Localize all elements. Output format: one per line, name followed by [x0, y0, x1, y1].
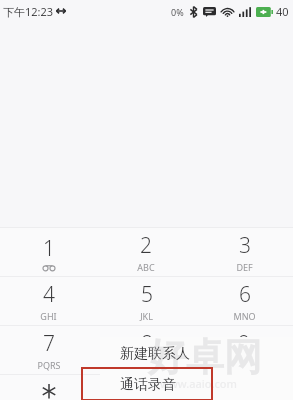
button[interactable]: 4 [0, 277, 97, 325]
button[interactable]: 7 [0, 326, 97, 374]
button[interactable]: 3 [195, 228, 293, 276]
staticText: www.aaio.com [160, 376, 237, 391]
staticText: 8 [141, 329, 153, 358]
staticText: 4 [43, 280, 55, 309]
staticText: 下午12:23 [3, 4, 54, 19]
staticText: DEF [236, 261, 253, 273]
staticText: PQRS [37, 359, 61, 371]
staticText: WXYZ [232, 359, 256, 371]
button[interactable]: 1 [0, 228, 97, 276]
staticText: 7 [43, 329, 55, 358]
staticText: TUV [138, 359, 155, 371]
staticText: GHI [40, 310, 57, 322]
staticText: 6 [239, 280, 251, 309]
button[interactable]: , [0, 375, 97, 400]
button[interactable]: 2 [97, 228, 195, 276]
button[interactable]: 5 [97, 277, 195, 325]
staticText: 40 [276, 4, 289, 19]
staticText: 5 [141, 280, 153, 309]
staticText: MNO [233, 310, 256, 322]
button[interactable]: 新建联系人 [100, 337, 293, 370]
button[interactable]: 通话录音 [100, 370, 293, 400]
staticText: 新建联系人 [120, 345, 190, 363]
staticText: 0 [140, 378, 152, 400]
button[interactable]: 6 [195, 277, 293, 325]
staticText: 9 [238, 329, 250, 358]
staticText: 好卓网 [148, 333, 262, 381]
button[interactable]: 9 [195, 326, 293, 374]
staticText: 通话录音 [120, 376, 176, 394]
staticText: JKL [140, 310, 153, 322]
button[interactable]: # [195, 375, 293, 400]
staticText: ABC [137, 261, 155, 273]
staticText: 2 [140, 231, 152, 260]
staticText: 0% [171, 6, 184, 18]
button[interactable]: 0 [97, 375, 195, 400]
button[interactable]: 8 [97, 326, 195, 374]
staticText: 1 [43, 234, 55, 263]
staticText: 3 [239, 231, 251, 260]
